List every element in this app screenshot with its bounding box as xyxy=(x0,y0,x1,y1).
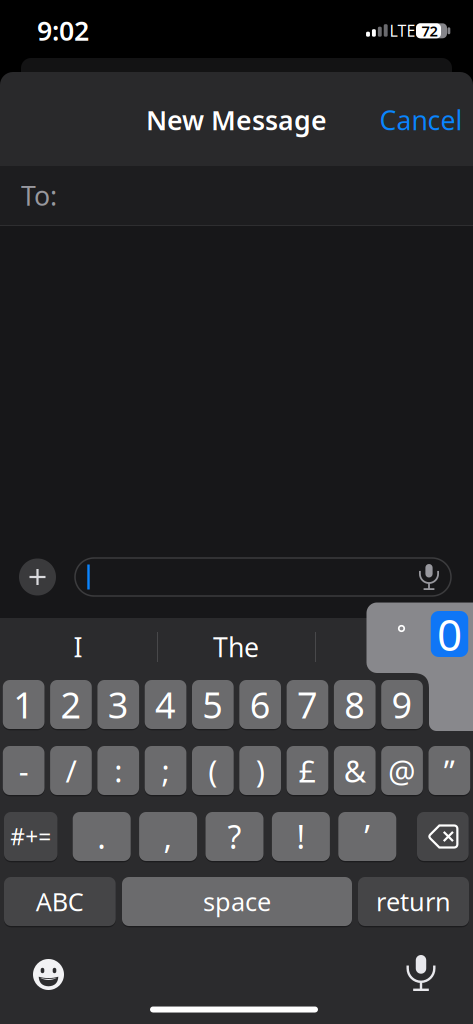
button[interactable]: 2 xyxy=(50,680,92,729)
button[interactable]: 6 xyxy=(239,680,281,729)
button[interactable]: The xyxy=(161,619,311,675)
button[interactable]: Message text field xyxy=(75,558,451,596)
staticText: ? xyxy=(227,815,241,858)
staticText: Cancel xyxy=(379,102,462,138)
staticText: : xyxy=(114,750,122,791)
staticText: New Message xyxy=(146,102,327,138)
button[interactable]: 3 xyxy=(97,680,139,729)
button[interactable]: Cancel xyxy=(379,102,462,138)
button[interactable]: . xyxy=(73,812,131,861)
staticText: I xyxy=(73,629,82,665)
button[interactable]: ) xyxy=(239,746,281,795)
button[interactable]: Dictation xyxy=(406,955,435,991)
staticText: ) xyxy=(256,750,265,791)
staticText: ( xyxy=(208,750,217,791)
button[interactable]: : xyxy=(97,746,139,795)
button[interactable]: return xyxy=(358,877,469,926)
staticText: ; xyxy=(161,750,169,791)
button[interactable]: / xyxy=(50,746,92,795)
staticText: 7 xyxy=(297,681,318,728)
staticText: space xyxy=(203,885,271,918)
staticText: 0 xyxy=(437,605,462,663)
staticText: LTE xyxy=(389,20,415,41)
staticText: ABC xyxy=(36,885,84,918)
button[interactable]: Emoji xyxy=(32,958,64,990)
staticText: ! xyxy=(296,815,305,858)
staticText: £ xyxy=(298,750,316,791)
button[interactable]: ? xyxy=(205,812,263,861)
staticText: The xyxy=(213,629,259,665)
staticText: , xyxy=(164,815,173,858)
button[interactable]: & xyxy=(334,746,376,795)
button[interactable]: 0 xyxy=(431,605,468,663)
staticText: 1 xyxy=(13,681,34,728)
staticText: return xyxy=(376,885,451,918)
button[interactable]: I xyxy=(3,619,153,675)
staticText: #+= xyxy=(10,821,51,851)
button[interactable]: Degree sign xyxy=(399,626,404,631)
staticText: To: xyxy=(21,178,57,213)
staticText: - xyxy=(19,750,29,791)
staticText: @ xyxy=(388,750,416,791)
button[interactable]: 5 xyxy=(192,680,234,729)
button[interactable]: 7 xyxy=(287,680,328,729)
staticText: 6 xyxy=(250,681,271,728)
staticText: 9:02 xyxy=(37,13,89,48)
button[interactable]: ( xyxy=(192,746,234,795)
staticText: ” xyxy=(444,750,455,791)
staticText: 5 xyxy=(202,681,223,728)
staticText: ’ xyxy=(364,815,370,858)
staticText: . xyxy=(97,815,106,858)
button[interactable]: ” xyxy=(428,746,470,795)
button[interactable]: space xyxy=(122,877,352,926)
button[interactable]: ABC xyxy=(4,877,116,926)
staticText: 9 xyxy=(392,681,413,728)
staticText: 2 xyxy=(60,681,81,728)
button[interactable]: Add attachment xyxy=(19,558,56,595)
button[interactable]: @ xyxy=(381,746,423,795)
staticText: / xyxy=(65,750,76,791)
staticText: & xyxy=(344,750,366,791)
button[interactable]: - xyxy=(3,746,44,795)
staticText: 72 xyxy=(421,21,437,41)
button[interactable]: 4 xyxy=(145,680,186,729)
button[interactable]: ; xyxy=(145,746,186,795)
button[interactable]: ’ xyxy=(338,812,396,861)
staticText: 3 xyxy=(108,681,129,728)
button[interactable]: ! xyxy=(272,812,330,861)
button[interactable]: 9 xyxy=(381,680,423,729)
staticText: 4 xyxy=(155,681,176,728)
button[interactable]: £ xyxy=(287,746,328,795)
button[interactable]: , xyxy=(139,812,197,861)
staticText: 8 xyxy=(344,681,365,728)
button[interactable]: To: xyxy=(0,166,473,225)
button[interactable]: Delete xyxy=(417,812,469,861)
button[interactable]: #+= xyxy=(4,812,57,861)
button[interactable]: 1 xyxy=(3,680,44,729)
button[interactable]: 8 xyxy=(334,680,376,729)
